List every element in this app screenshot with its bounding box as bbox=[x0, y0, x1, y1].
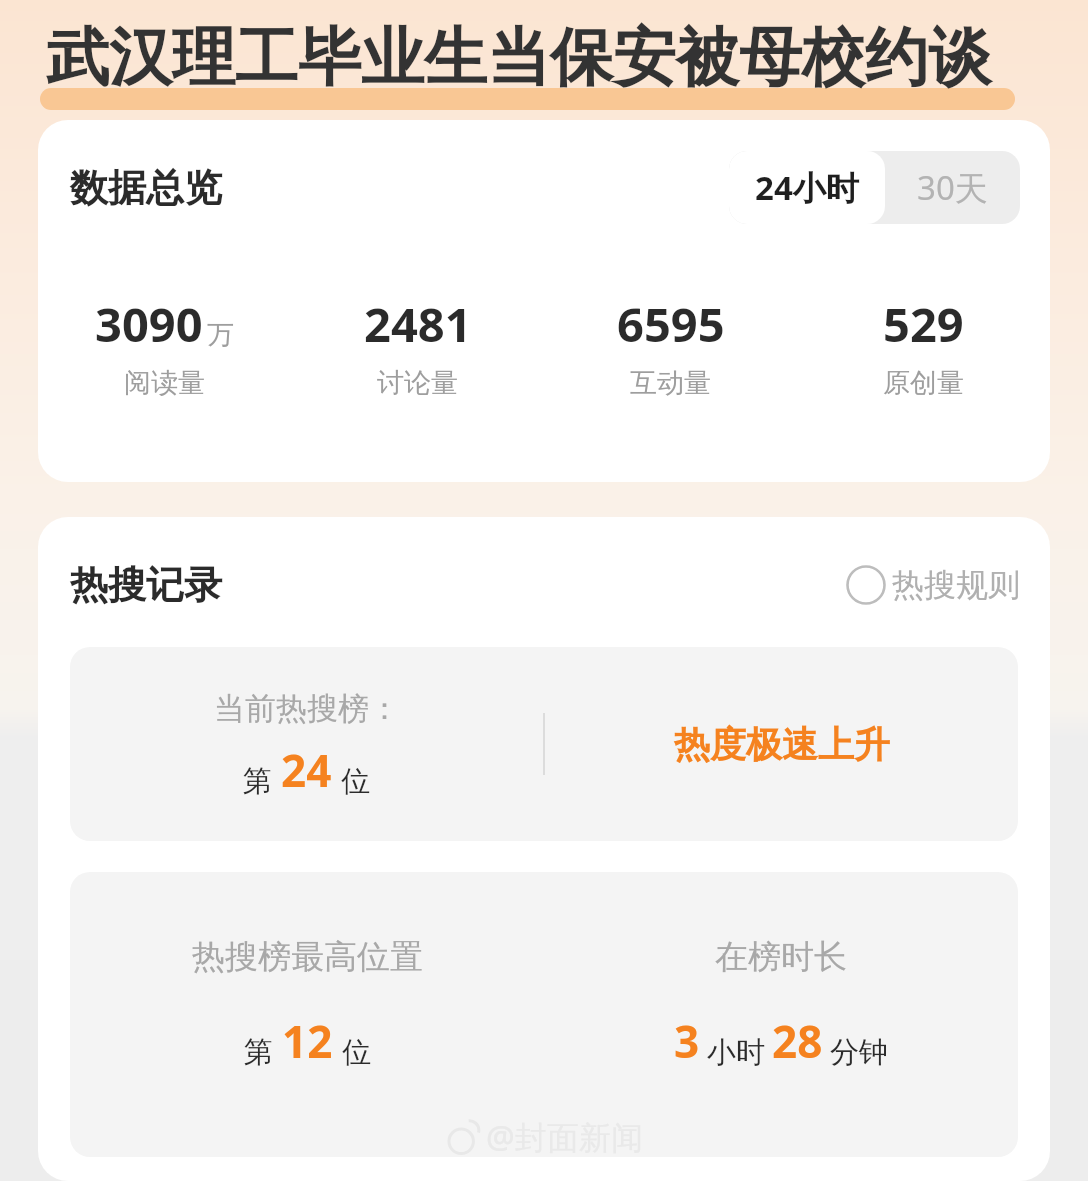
staticText: 小时 bbox=[707, 1034, 765, 1071]
staticText: 讨论量 bbox=[377, 366, 458, 400]
staticText: 阅读量 bbox=[124, 366, 205, 400]
staticText: 28 bbox=[772, 1011, 823, 1071]
staticText: 6595 bbox=[617, 292, 725, 356]
staticText: 24 bbox=[281, 740, 332, 800]
staticText: 分钟 bbox=[830, 1034, 888, 1071]
staticText: 2481 bbox=[364, 292, 472, 356]
staticText: 位 bbox=[342, 1034, 371, 1071]
staticText: 在榜时长 bbox=[715, 936, 847, 978]
staticText: 位 bbox=[341, 763, 370, 800]
staticText: 30天 bbox=[917, 165, 988, 210]
staticText: 第 bbox=[244, 1034, 273, 1071]
staticText: 热度极速上升 bbox=[674, 722, 890, 767]
other: 热搜规则说明 bbox=[846, 565, 886, 605]
button[interactable]: 24小时 bbox=[729, 151, 885, 224]
staticText: 互动量 bbox=[630, 366, 711, 400]
staticText: 万 bbox=[207, 318, 234, 352]
staticText: 3 bbox=[674, 1011, 700, 1071]
staticText: 当前热搜榜： bbox=[214, 689, 400, 728]
staticText: 原创量 bbox=[883, 366, 964, 400]
staticText: 热搜规则 bbox=[892, 565, 1020, 605]
staticText: @封面新闻 bbox=[486, 1115, 643, 1159]
button[interactable]: 热搜榜最高位置 bbox=[70, 872, 1018, 1157]
staticText: 529 bbox=[883, 292, 964, 356]
staticText: 数据总览 bbox=[70, 164, 222, 212]
staticText: 第 bbox=[243, 763, 272, 800]
button[interactable]: 30天 bbox=[885, 151, 1020, 224]
staticText: 3090 bbox=[95, 292, 203, 356]
staticText: 热搜榜最高位置 bbox=[192, 936, 423, 978]
staticText: 12 bbox=[282, 1011, 333, 1071]
staticText: 24小时 bbox=[755, 165, 859, 210]
staticText: 热搜记录 bbox=[70, 561, 222, 609]
staticText: 武汉理工毕业生当保安被母校约谈 bbox=[46, 18, 991, 97]
button[interactable]: 当前热搜榜： bbox=[70, 647, 1018, 841]
button[interactable]: 热搜规则说明 bbox=[842, 561, 1024, 609]
